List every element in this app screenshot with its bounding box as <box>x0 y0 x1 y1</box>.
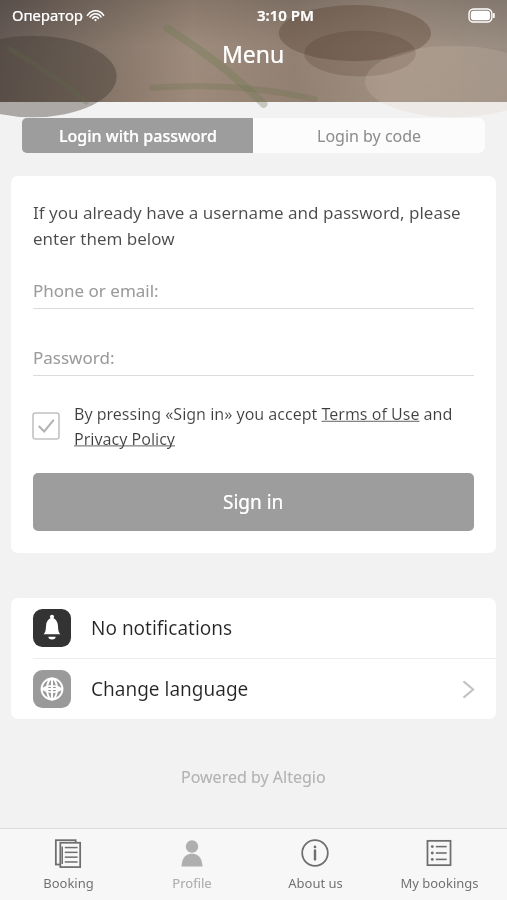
staticText: Password: <box>33 346 115 369</box>
staticText: 3:10 PM <box>257 5 314 25</box>
button[interactable]: Login by code <box>253 118 485 153</box>
button[interactable]: Password: <box>33 346 474 376</box>
button[interactable]: About us <box>260 829 370 900</box>
staticText: My bookings <box>400 874 479 892</box>
staticText: Change language <box>91 676 249 702</box>
button[interactable]: Login with password <box>22 118 253 153</box>
button[interactable]: Change language <box>11 659 496 719</box>
staticText: Оператор <box>12 5 83 25</box>
button[interactable]: No notifications <box>11 598 496 658</box>
staticText: No notifications <box>91 615 233 641</box>
staticText: Login with password <box>59 125 217 147</box>
button[interactable]: By pressing «Sign in» you accept Terms o… <box>33 403 474 449</box>
staticText: If you already have a username and passw… <box>33 201 474 250</box>
button[interactable]: Booking <box>13 829 123 900</box>
staticText: Phone or email: <box>33 279 159 302</box>
button[interactable]: Sign in <box>33 473 474 531</box>
staticText: Login by code <box>317 125 422 147</box>
staticText: About us <box>288 874 343 892</box>
staticText: Menu <box>222 38 285 69</box>
button[interactable]: My bookings <box>384 829 494 900</box>
button[interactable]: Phone or email: <box>33 279 474 309</box>
staticText: Powered by Altegio <box>181 766 326 788</box>
staticText: By pressing «Sign in» you accept Terms o… <box>74 403 474 449</box>
staticText: Profile <box>172 874 212 892</box>
staticText: Sign in <box>223 489 284 515</box>
staticText: Booking <box>43 874 94 892</box>
button[interactable]: Profile <box>137 829 247 900</box>
